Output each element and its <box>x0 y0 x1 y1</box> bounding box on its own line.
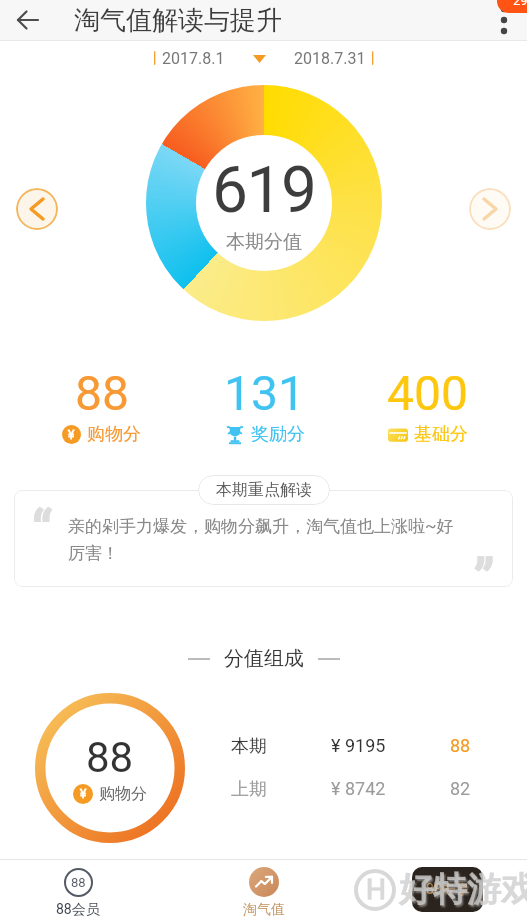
staticText: ” <box>474 547 495 587</box>
staticText: 131 <box>224 365 305 421</box>
button[interactable] <box>16 188 58 230</box>
staticText: 82 <box>450 778 471 799</box>
staticText: 88 <box>86 733 134 782</box>
staticText: 丨 <box>366 50 380 68</box>
staticText: 基础分 <box>414 423 468 446</box>
button[interactable] <box>371 860 527 922</box>
staticText: ¥ <box>80 787 87 801</box>
staticText: 购物分 <box>99 784 147 804</box>
staticText: 奖励分 <box>251 423 305 446</box>
staticText: ¥ 9195 <box>331 735 386 756</box>
staticText: “ <box>32 498 52 564</box>
staticText: 淘气值 <box>243 901 285 919</box>
staticText: 本期分值 <box>226 230 302 254</box>
staticText: ¥ 8742 <box>331 778 386 799</box>
staticText: 好特游戏 <box>399 868 527 911</box>
staticText: 88会员 <box>56 901 100 919</box>
button[interactable] <box>487 3 521 37</box>
staticText: 400 <box>387 365 468 421</box>
button[interactable]: “ <box>14 490 513 587</box>
staticText: 丨 <box>148 50 162 68</box>
staticText: 619 <box>212 153 316 228</box>
staticText: 2018.7.31 <box>294 49 366 68</box>
staticText: 88 <box>450 735 471 756</box>
staticText: 购物分 <box>87 423 141 446</box>
staticText: 分值组成 <box>224 646 304 671</box>
button[interactable]: 400 <box>346 365 509 446</box>
button[interactable] <box>469 188 511 230</box>
staticText: H <box>366 873 386 906</box>
staticText: 88 <box>71 875 86 890</box>
staticText: 本期重点解读 <box>216 480 312 500</box>
button[interactable]: 88 <box>20 365 183 446</box>
button[interactable]: 淘气值 <box>156 860 371 922</box>
staticText: 29 <box>513 0 527 8</box>
button[interactable] <box>8 0 48 40</box>
button[interactable]: 丨 <box>148 49 380 68</box>
button[interactable]: 29 <box>497 0 527 13</box>
staticText: 88专享 <box>426 881 470 899</box>
staticText: 上期 <box>231 778 267 801</box>
button[interactable]: 131 <box>183 365 346 446</box>
staticText: 淘气值解读与提升 <box>74 4 282 37</box>
staticText: ¥ <box>68 428 75 442</box>
staticText: 2017.8.1 <box>162 49 225 68</box>
staticText: 88 <box>75 365 129 421</box>
staticText: 亲的剁手力爆发，购物分飙升，淘气值也上涨啦~好 厉害！ <box>68 516 454 564</box>
staticText: 本期 <box>231 735 267 758</box>
button[interactable]: 88 <box>0 860 156 922</box>
